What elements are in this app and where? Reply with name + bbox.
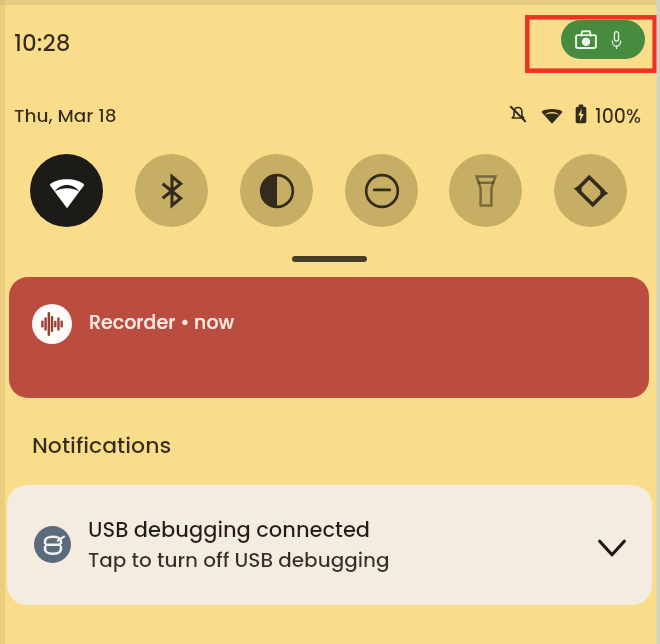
button[interactable]: Camera and microphone in use (561, 20, 645, 59)
button[interactable]: Do not disturb (345, 154, 418, 227)
button[interactable]: Notifications (32, 430, 172, 461)
button[interactable]: 10:28 (14, 27, 71, 59)
button[interactable]: Flashlight (449, 154, 522, 227)
button[interactable]: Recorder • now (9, 277, 649, 398)
staticText: USB debugging connected (88, 515, 371, 544)
button[interactable]: Bluetooth (135, 154, 208, 227)
staticText: Recorder • now (89, 309, 235, 336)
button[interactable]: Auto-rotate (554, 154, 627, 227)
staticText: 100% (595, 103, 642, 130)
staticText: Tap to turn off USB debugging (88, 546, 390, 574)
button[interactable]: Thu, Mar 18 (14, 103, 117, 129)
button[interactable]: Expand notification (591, 527, 633, 569)
button[interactable]: USB debugging connected (7, 485, 652, 605)
button[interactable]: Wi-Fi (30, 154, 103, 227)
button[interactable]: Dark theme (240, 154, 313, 227)
